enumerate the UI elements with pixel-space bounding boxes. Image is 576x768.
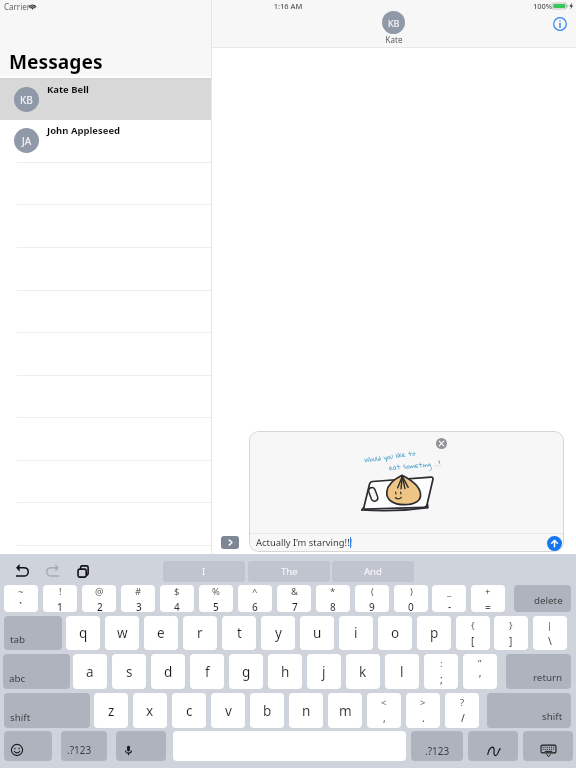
staticText: 1:16 AM xyxy=(0,1,576,11)
staticText: < xyxy=(381,696,387,709)
button[interactable]: abc xyxy=(3,654,70,689)
staticText: Kate xyxy=(212,34,576,45)
button[interactable]: _ xyxy=(432,585,466,612)
button[interactable]: d xyxy=(151,654,185,689)
button[interactable]: ) xyxy=(394,585,428,612)
button[interactable]: j xyxy=(307,654,341,689)
staticText: * xyxy=(330,585,336,598)
button[interactable]: o xyxy=(378,616,412,650)
button[interactable]: .?123 xyxy=(411,731,463,761)
staticText: f xyxy=(205,663,210,681)
button[interactable]: i xyxy=(339,616,373,650)
button[interactable]: return xyxy=(506,654,571,689)
button[interactable]: ! xyxy=(43,585,77,612)
button[interactable]: Details xyxy=(553,17,567,31)
button[interactable]: m xyxy=(328,693,362,728)
staticText: [ xyxy=(471,634,475,648)
button[interactable]: { xyxy=(456,616,490,650)
button[interactable]: $ xyxy=(160,585,194,612)
button[interactable]: JA xyxy=(0,120,211,163)
button[interactable]: l xyxy=(385,654,419,689)
staticText: y xyxy=(275,624,282,642)
button[interactable]: KB xyxy=(382,11,405,34)
staticText: KB xyxy=(388,17,400,29)
staticText: g xyxy=(242,663,251,681)
button[interactable] xyxy=(523,731,573,761)
staticText: delete xyxy=(534,594,563,607)
button[interactable]: : xyxy=(424,654,458,689)
button[interactable]: .?123 xyxy=(61,731,107,761)
staticText: l xyxy=(400,663,404,681)
button[interactable]: And xyxy=(332,561,414,582)
button[interactable]: @ xyxy=(82,585,116,612)
button[interactable]: w xyxy=(105,616,139,650)
button[interactable]: shift xyxy=(487,693,571,728)
button[interactable]: | xyxy=(533,616,567,650)
staticText: return xyxy=(533,671,563,684)
button[interactable]: Apps xyxy=(221,536,239,549)
button[interactable]: Redo xyxy=(45,563,61,579)
button[interactable]: tab xyxy=(4,616,62,650)
button[interactable]: f xyxy=(190,654,224,689)
staticText: ` xyxy=(19,600,23,612)
staticText: 7 xyxy=(292,600,298,612)
button[interactable]: Paste xyxy=(75,563,91,579)
button[interactable]: b xyxy=(250,693,284,728)
button[interactable]: a xyxy=(73,654,107,689)
button[interactable]: y xyxy=(261,616,295,650)
staticText: Messages xyxy=(9,48,103,74)
staticText: JA xyxy=(22,134,32,148)
button[interactable]: c xyxy=(172,693,206,728)
staticText: 5 xyxy=(213,600,219,612)
button[interactable]: I xyxy=(163,561,245,582)
button[interactable]: g xyxy=(229,654,263,689)
button[interactable]: # xyxy=(121,585,155,612)
staticText: abc xyxy=(9,672,26,685)
button[interactable]: & xyxy=(277,585,311,612)
button[interactable]: ( xyxy=(355,585,389,612)
button[interactable]: ~ xyxy=(4,585,38,612)
button[interactable]: The xyxy=(248,561,330,582)
button[interactable]: n xyxy=(289,693,323,728)
button[interactable]: ? xyxy=(445,693,479,728)
staticText: And xyxy=(364,565,382,578)
button[interactable]: > xyxy=(406,693,440,728)
button[interactable]: Send xyxy=(547,536,562,551)
button[interactable]: delete xyxy=(514,585,571,612)
button[interactable]: } xyxy=(494,616,528,650)
button[interactable]: z xyxy=(94,693,128,728)
staticText: @ xyxy=(95,585,104,598)
staticText: ! xyxy=(59,585,62,598)
staticText: u xyxy=(313,624,322,642)
button[interactable]: v xyxy=(211,693,245,728)
button[interactable]: * xyxy=(316,585,350,612)
button[interactable]: ” xyxy=(463,654,497,689)
button[interactable] xyxy=(468,731,518,761)
button[interactable]: t xyxy=(222,616,256,650)
staticText: ) xyxy=(410,585,413,598)
button[interactable]: p xyxy=(417,616,451,650)
button[interactable]: u xyxy=(300,616,334,650)
button[interactable]: r xyxy=(183,616,217,650)
button[interactable]: shift xyxy=(4,693,90,728)
button[interactable]: < xyxy=(367,693,401,728)
button[interactable]: q xyxy=(66,616,100,650)
button[interactable] xyxy=(116,731,166,761)
button[interactable]: h xyxy=(268,654,302,689)
button[interactable]: s xyxy=(112,654,146,689)
staticText: c xyxy=(186,702,193,720)
button[interactable]: x xyxy=(133,693,167,728)
button[interactable]: k xyxy=(346,654,380,689)
button[interactable]: Close xyxy=(436,438,447,449)
staticText: ( xyxy=(371,585,374,598)
button[interactable]: Undo xyxy=(14,563,30,579)
button[interactable]: % xyxy=(199,585,233,612)
button[interactable] xyxy=(4,731,52,761)
button[interactable]: ^ xyxy=(238,585,272,612)
button[interactable]: KB xyxy=(0,79,211,120)
button[interactable]: e xyxy=(144,616,178,650)
staticText: d xyxy=(164,663,173,681)
button[interactable]: + xyxy=(471,585,505,612)
staticText: : xyxy=(440,657,443,670)
